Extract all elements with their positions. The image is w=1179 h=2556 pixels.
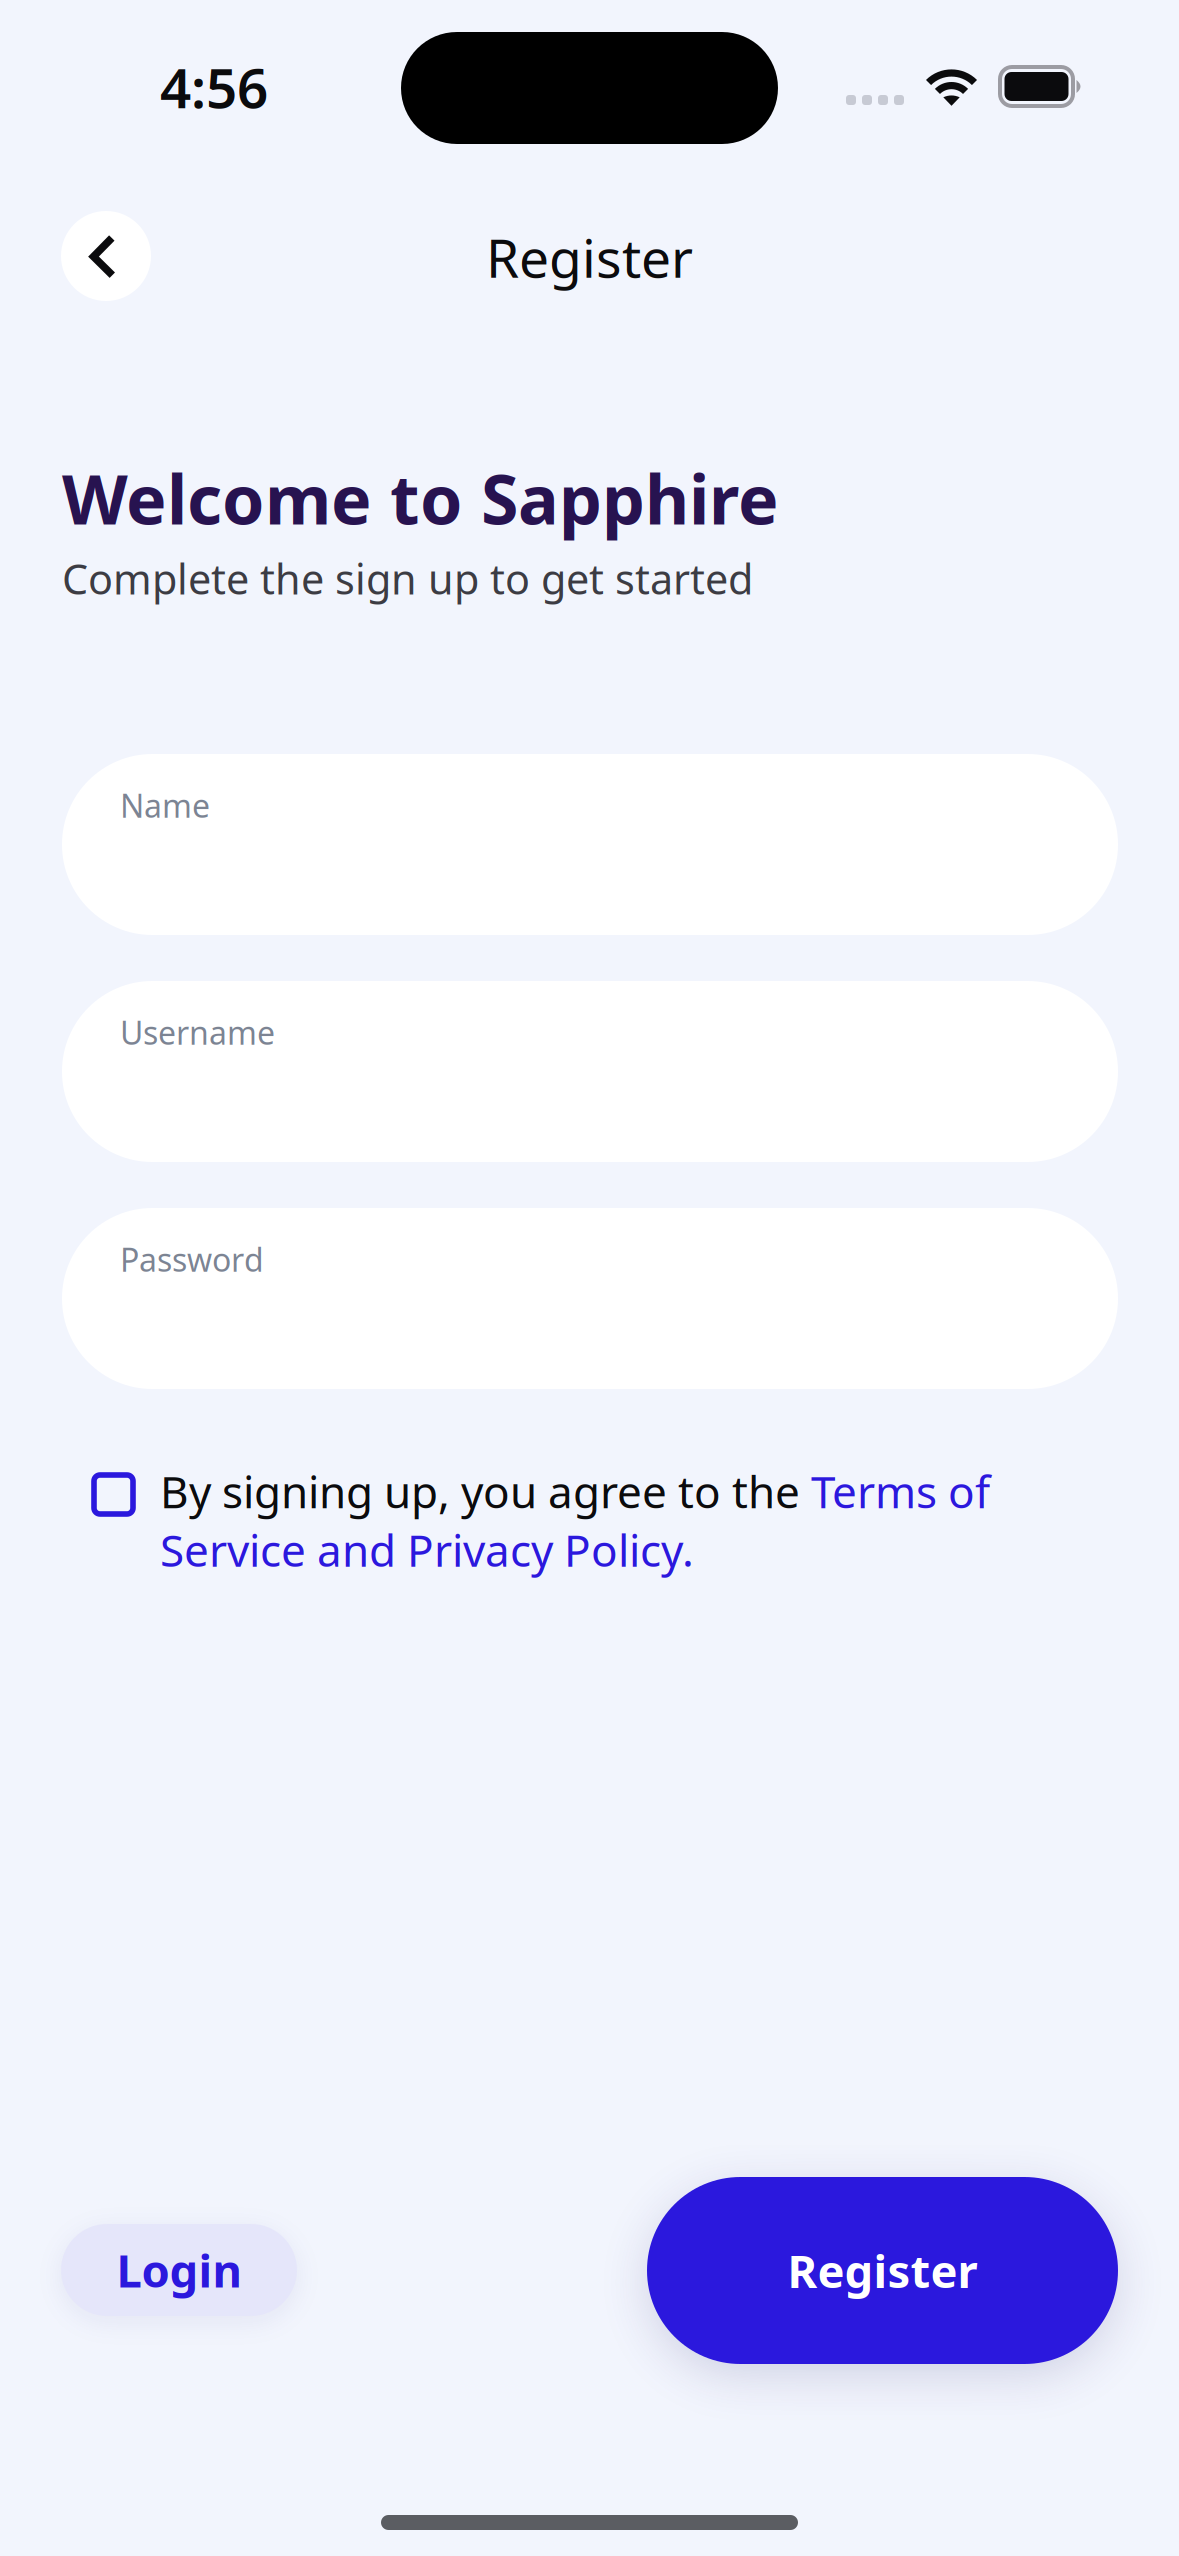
button[interactable]: Name	[62, 754, 1118, 935]
button[interactable]: Username	[62, 981, 1118, 1162]
staticText: Login	[116, 2240, 241, 2300]
staticText: Password	[120, 1238, 264, 1280]
staticText: Username	[120, 1011, 275, 1053]
staticText: Register	[787, 2240, 977, 2301]
button[interactable]: Login	[61, 2224, 297, 2316]
button[interactable]: Register	[647, 2177, 1118, 2364]
button[interactable]: Password	[62, 1208, 1118, 1389]
staticText: Complete the sign up to get started	[62, 551, 753, 606]
staticText: 4:56	[160, 51, 268, 123]
staticText: Name	[120, 784, 210, 826]
button[interactable]: By signing up, you agree to the Terms of…	[91, 1462, 1051, 1588]
button[interactable]: Back	[61, 211, 151, 301]
staticText: By signing up, you agree to the Terms of…	[160, 1462, 990, 1579]
staticText: Welcome to Sapphire	[62, 453, 779, 543]
staticText: Register	[486, 222, 693, 292]
